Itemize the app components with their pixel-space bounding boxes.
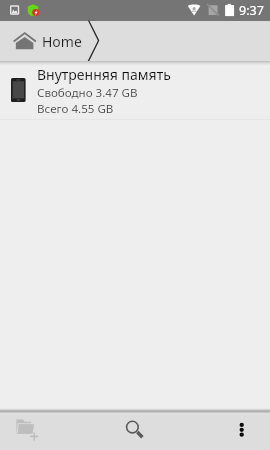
- staticText: Всего 4.55 GB: [37, 101, 114, 117]
- button[interactable]: Home: [0, 21, 88, 61]
- button[interactable]: Search: [110, 410, 154, 450]
- staticText: 9:37: [239, 2, 264, 19]
- button[interactable]: New folder: [0, 410, 48, 450]
- button[interactable]: Внутренняя память: [0, 61, 270, 119]
- staticText: Внутренняя память: [37, 65, 171, 84]
- staticText: Home: [42, 32, 82, 51]
- staticText: Свободно 3.47 GB: [37, 85, 138, 101]
- button[interactable]: More options: [224, 410, 260, 450]
